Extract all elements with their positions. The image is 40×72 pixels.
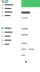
button[interactable]	[1, 7, 20, 10]
button[interactable]	[1, 10, 20, 14]
button[interactable]	[1, 30, 20, 34]
button[interactable]	[1, 3, 20, 7]
button[interactable]	[1, 26, 20, 30]
button[interactable]	[1, 42, 20, 46]
staticText: 9:41	[1, 0, 8, 4]
button[interactable]	[1, 14, 20, 17]
button[interactable]	[1, 34, 20, 38]
button[interactable]	[1, 38, 20, 42]
